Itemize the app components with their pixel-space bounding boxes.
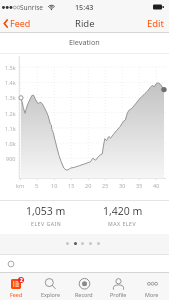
staticText: 1,420 m: [103, 204, 143, 218]
staticText: 1.2k: [5, 110, 16, 117]
staticText: MAX ELEV: [108, 220, 137, 227]
button[interactable]: More: [135, 273, 169, 300]
staticText: Ride: [75, 17, 95, 30]
staticText: 900: [6, 155, 16, 162]
button[interactable]: Record: [67, 273, 101, 300]
button[interactable]: 1,053 m: [8, 204, 84, 227]
button[interactable]: 2: [0, 273, 33, 300]
staticText: 40: [153, 182, 160, 189]
staticText: Feed: [10, 291, 23, 298]
button[interactable]: Profile: [101, 273, 135, 300]
button[interactable]: Feed: [0, 14, 37, 32]
staticText: 15: [68, 182, 75, 189]
staticText: 1.3k: [5, 94, 16, 101]
staticText: 1.5k: [5, 64, 16, 71]
staticText: km: [16, 182, 25, 189]
other: More: [146, 278, 159, 290]
staticText: More: [145, 291, 159, 298]
staticText: Profile: [110, 291, 127, 298]
staticText: 1,053 m: [26, 204, 66, 218]
other: Profile: [112, 278, 125, 290]
staticText: 10: [51, 182, 58, 189]
other: Explore: [44, 278, 57, 290]
staticText: Elevation: [69, 37, 100, 47]
staticText: 1.4k: [5, 79, 16, 86]
staticText: Edit: [147, 17, 165, 29]
staticText: 5: [35, 182, 39, 189]
staticText: ELEV GAIN: [31, 220, 62, 227]
button[interactable]: 1,420 m: [84, 204, 161, 227]
other: Record: [78, 278, 91, 290]
staticText: 20: [85, 182, 92, 189]
button[interactable]: Explore: [33, 273, 67, 300]
staticText: 35: [136, 182, 143, 189]
staticText: Feed: [10, 17, 31, 29]
staticText: Record: [75, 291, 93, 298]
staticText: 2: [20, 277, 23, 283]
staticText: 30: [119, 182, 126, 189]
staticText: Sunrise: [20, 3, 44, 12]
button[interactable]: Edit: [141, 14, 169, 32]
staticText: 1.0k: [5, 140, 16, 147]
staticText: 1.1k: [5, 125, 16, 132]
staticText: Explore: [41, 291, 60, 298]
staticText: 15:43: [75, 2, 94, 12]
staticText: 25: [102, 182, 109, 189]
